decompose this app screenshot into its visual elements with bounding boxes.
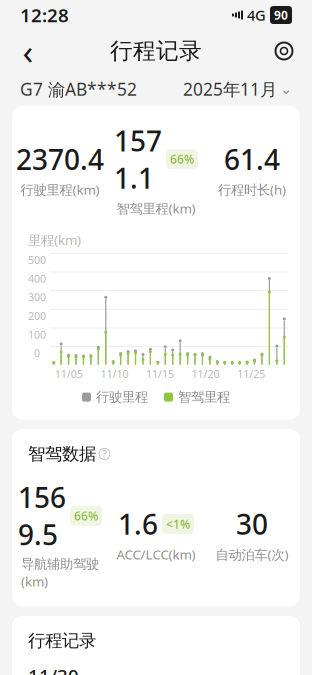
staticText: 智驾数据 bbox=[28, 443, 96, 465]
staticText: 500 bbox=[28, 253, 46, 267]
staticText: 11/25 bbox=[237, 367, 265, 381]
staticText: 1.6 bbox=[118, 505, 158, 543]
staticText: 智驾里程(km) bbox=[116, 199, 195, 217]
staticText: ACC/LCC(km) bbox=[116, 546, 195, 563]
staticText: 自动泊车(次) bbox=[215, 546, 288, 563]
staticText: 1569.5 bbox=[18, 479, 66, 553]
staticText: 12:28 bbox=[20, 3, 69, 27]
staticText: 11/30 bbox=[28, 663, 79, 675]
staticText: 行驶里程(km) bbox=[20, 181, 99, 198]
staticText: G7 渝AB***52 bbox=[20, 77, 137, 100]
staticText: 行程时长(h) bbox=[218, 181, 286, 198]
staticText: 0 bbox=[34, 346, 40, 360]
staticText: 11/15 bbox=[146, 367, 174, 381]
staticText: ‹ bbox=[22, 28, 33, 74]
staticText: 400 bbox=[28, 271, 46, 286]
staticText: 30 bbox=[236, 505, 268, 543]
button[interactable]: G7 渝AB***52 bbox=[20, 77, 137, 100]
staticText: 行程记录 bbox=[28, 630, 96, 651]
button[interactable]: 2025年11月 bbox=[183, 77, 292, 100]
staticText: 2025年11月 bbox=[183, 77, 277, 100]
staticText: 11/05 bbox=[55, 367, 83, 381]
staticText: 200 bbox=[28, 309, 46, 323]
staticText: ⌄ bbox=[280, 81, 292, 97]
staticText: 100 bbox=[28, 327, 46, 342]
staticText: 66% bbox=[170, 151, 194, 167]
staticText: 4G bbox=[247, 5, 266, 25]
button[interactable]: Settings bbox=[264, 31, 304, 71]
staticText: 1571.1 bbox=[114, 122, 162, 196]
staticText: 2370.4 bbox=[16, 141, 104, 178]
staticText: 智驾里程 bbox=[178, 389, 230, 405]
button[interactable]: Back bbox=[8, 31, 48, 71]
staticText: 行程记录 bbox=[110, 37, 202, 65]
staticText: <1% bbox=[166, 516, 190, 532]
staticText: 11/10 bbox=[100, 367, 128, 381]
staticText: 61.4 bbox=[224, 141, 280, 178]
staticText: 90 bbox=[274, 7, 288, 23]
staticText: 66% bbox=[74, 508, 98, 524]
staticText: 300 bbox=[28, 290, 46, 304]
staticText: 导航辅助驾驶(km) bbox=[21, 556, 99, 590]
staticText: ? bbox=[102, 447, 107, 461]
staticText: 11/20 bbox=[192, 367, 220, 381]
staticText: 行驶里程 bbox=[96, 389, 148, 405]
button[interactable]: About assisted driving data bbox=[99, 448, 110, 459]
staticText: 里程(km) bbox=[28, 231, 81, 249]
